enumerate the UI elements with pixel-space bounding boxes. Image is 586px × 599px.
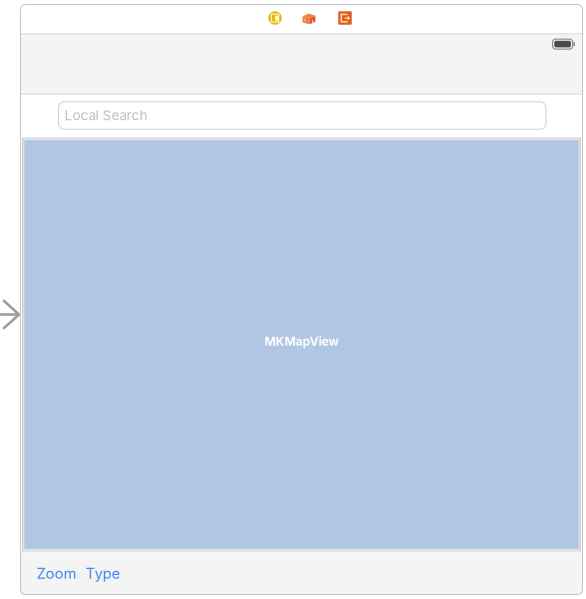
- button[interactable]: View Controller: [266, 9, 284, 27]
- button[interactable]: Exit: [336, 9, 354, 27]
- staticText: Zoom: [36, 565, 76, 582]
- button[interactable]: Local Search: [58, 102, 546, 129]
- staticText: MKMapView: [264, 334, 338, 349]
- button[interactable]: Type: [85, 565, 120, 582]
- button[interactable]: Object: [300, 9, 318, 27]
- button[interactable]: Zoom: [36, 565, 76, 582]
- staticText: Type: [85, 565, 120, 582]
- staticText: Local Search: [64, 107, 147, 123]
